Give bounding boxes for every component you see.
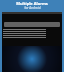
staticText: for Android	[24, 6, 41, 10]
staticText: Multiple Alarms	[16, 1, 48, 6]
